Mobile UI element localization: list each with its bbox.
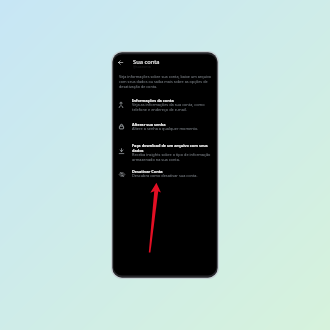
staticText: Veja informações sobre sua conta, baixe … [119,74,214,89]
staticText: Sua conta [133,58,160,66]
staticText: Faça download de um arquivo com seus dad… [132,143,213,153]
button[interactable] [117,143,213,163]
staticText: Descubra como desativar sua conta. [132,173,198,178]
staticText: Veja as informações da sua conta, como t… [132,102,213,112]
staticText: Informações da conta [132,98,174,103]
staticText: Receba insights sobre o tipo de informaç… [132,152,213,162]
staticText: @suaconta [133,64,151,69]
staticText: Altere a senha a qualquer momento. [132,126,199,131]
staticText: Desativar Conta [132,169,163,174]
button[interactable] [117,122,213,142]
button[interactable] [117,98,213,118]
staticText: Alterar sua senha [132,122,166,127]
button[interactable] [117,169,213,189]
button[interactable]: Back [115,57,126,68]
